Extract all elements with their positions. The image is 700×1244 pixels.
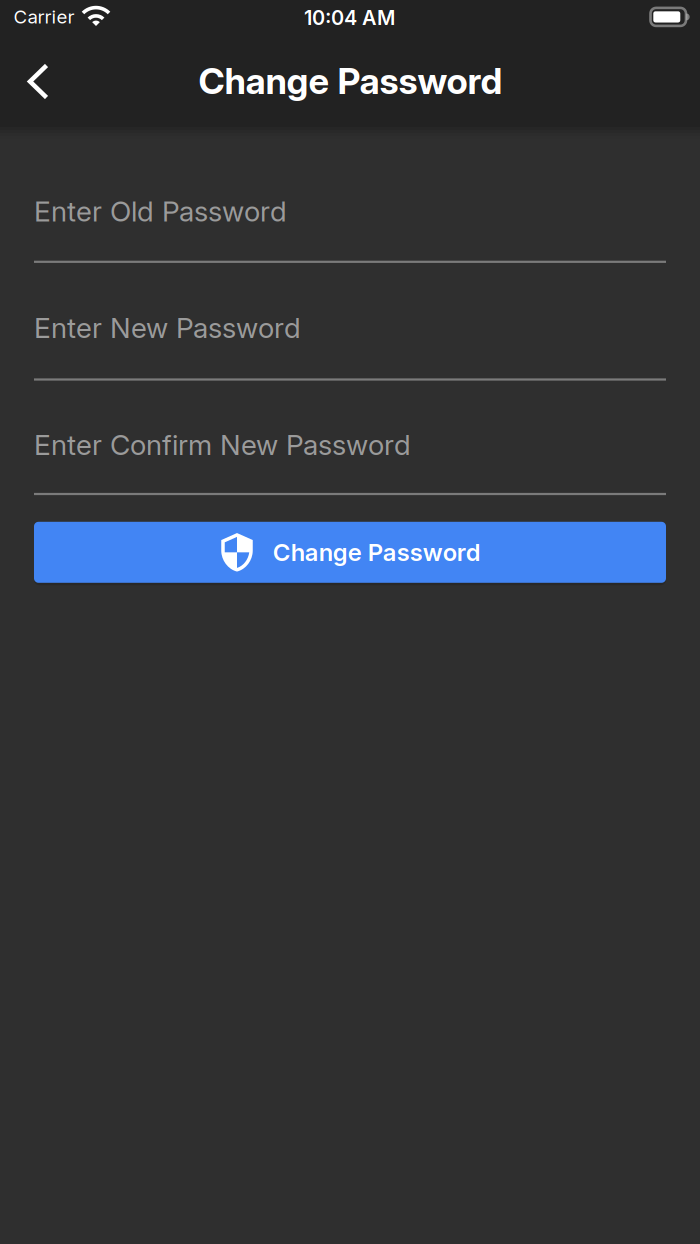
staticText: Carrier: [14, 6, 75, 28]
staticText: Enter Old Password: [34, 195, 287, 228]
staticText: Enter New Password: [34, 311, 301, 344]
staticText: Change Password: [198, 60, 502, 102]
staticText: Change Password: [273, 538, 481, 566]
button[interactable]: Enter Old Password: [34, 187, 666, 265]
staticText: 10:04 AM: [304, 6, 395, 30]
staticText: Enter Confirm New Password: [34, 428, 411, 461]
button[interactable]: Change Password: [34, 522, 666, 583]
button[interactable]: Enter New Password: [34, 304, 666, 382]
button[interactable]: Enter Confirm New Password: [34, 421, 666, 499]
button[interactable]: Back: [9, 53, 65, 109]
